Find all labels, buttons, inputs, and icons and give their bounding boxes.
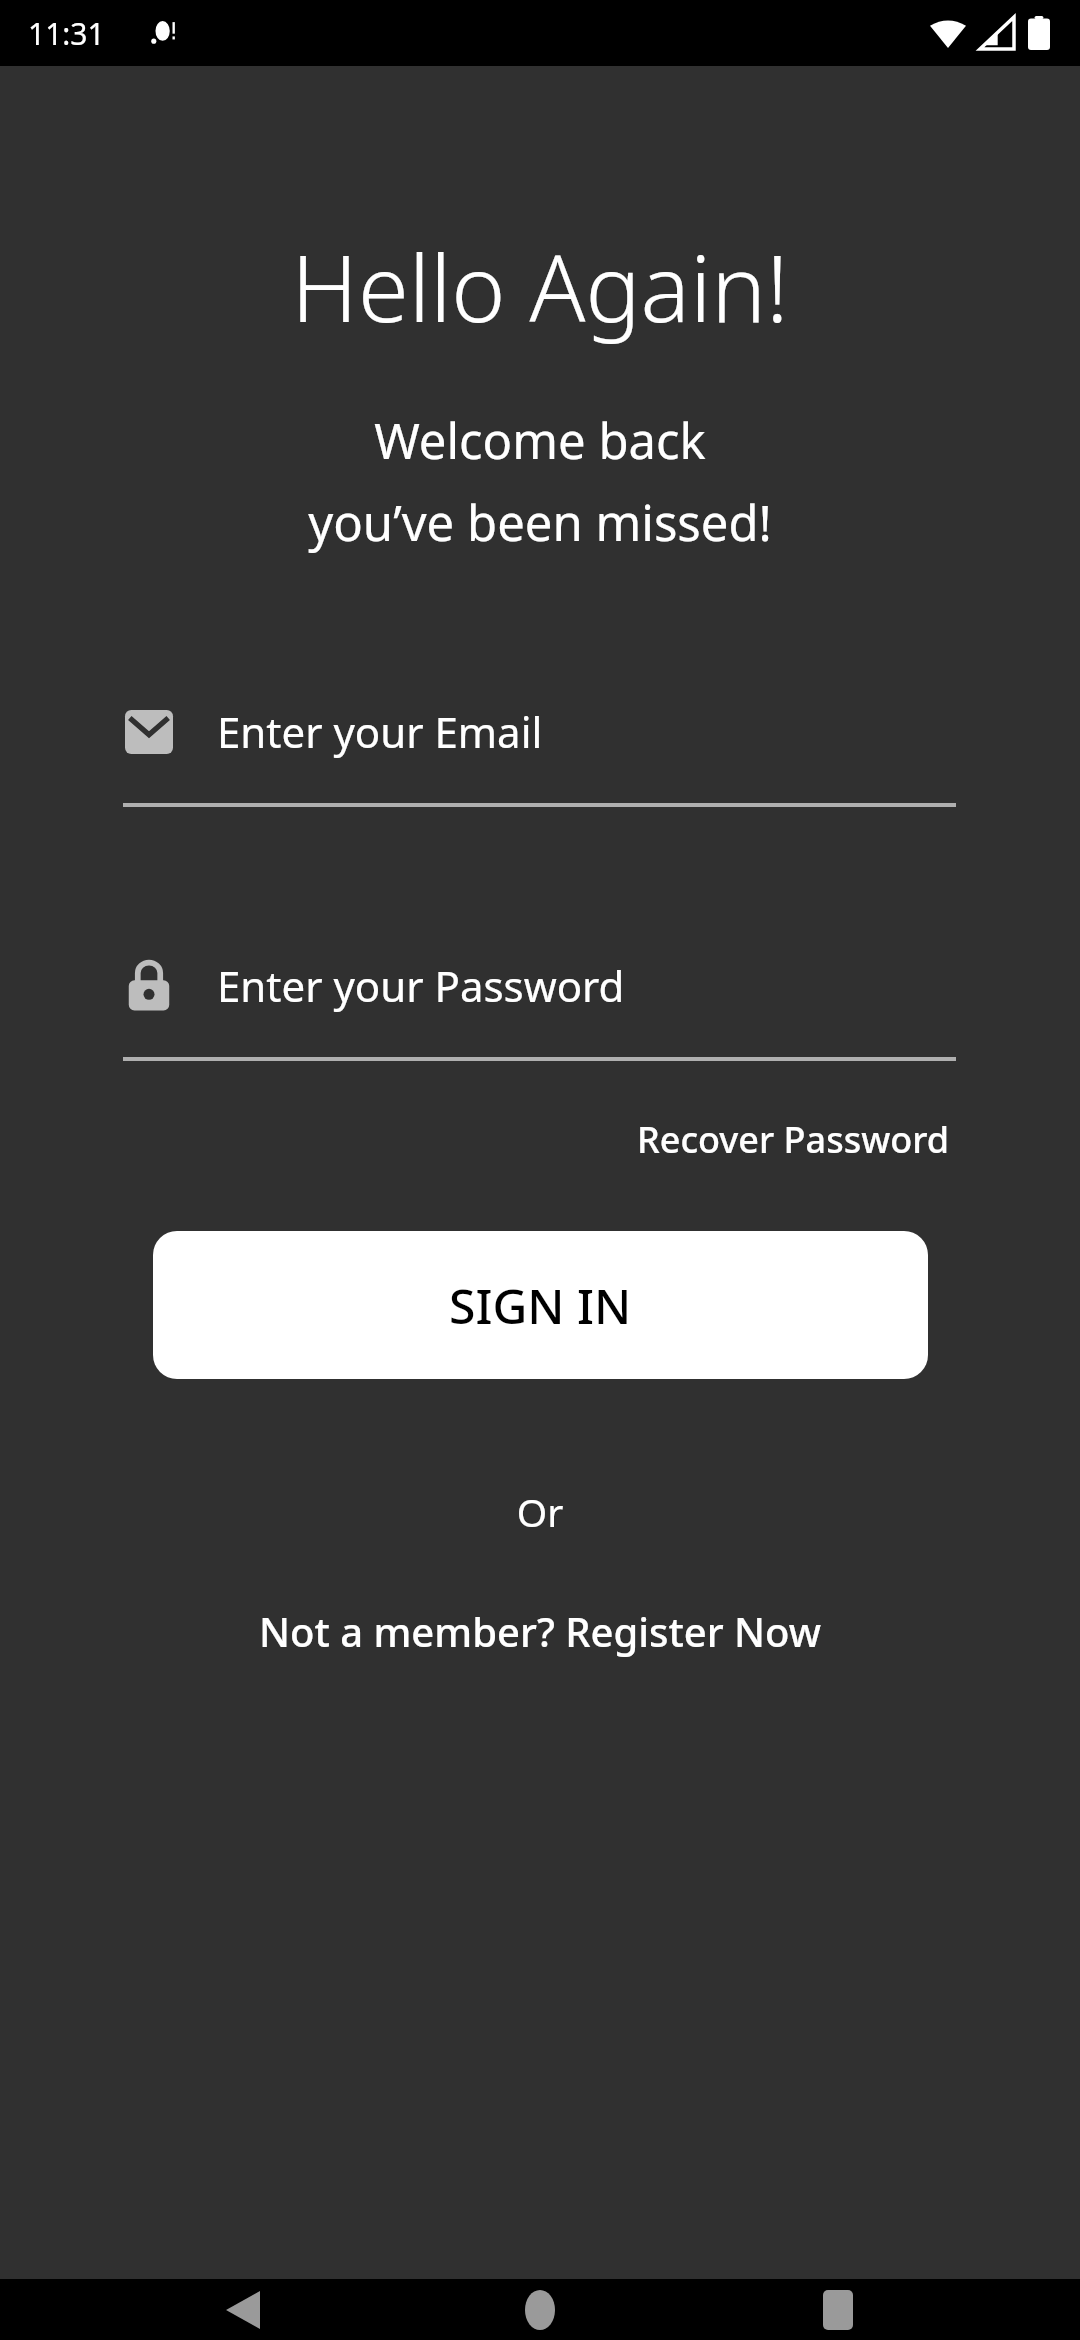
other: Email (123, 706, 175, 758)
staticText: Recover Password (637, 1115, 950, 1164)
button[interactable]: SIGN IN (153, 1231, 928, 1379)
button[interactable]: Recent apps (783, 2279, 893, 2340)
button[interactable]: Recover Password (631, 1105, 956, 1174)
button[interactable]: Password (123, 957, 956, 1061)
staticText: 11:31 (28, 13, 105, 54)
staticText: SIGN IN (449, 1273, 632, 1338)
button[interactable]: Email (123, 703, 956, 807)
staticText: Enter your Email (217, 703, 543, 760)
button[interactable]: Back (188, 2279, 298, 2340)
staticText: Enter your Password (217, 957, 625, 1014)
other: Password (123, 960, 175, 1012)
staticText: Or (0, 1485, 1080, 1538)
staticText: Not a member? Register Now (259, 1604, 821, 1658)
button[interactable]: Not a member? Register Now (249, 1594, 831, 1668)
button[interactable]: Home (485, 2279, 595, 2340)
staticText: Welcome back you’ve been missed! (0, 407, 1080, 555)
staticText: Hello Again! (0, 224, 1080, 349)
